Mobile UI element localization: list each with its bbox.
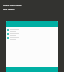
button[interactable] [6,28,58,32]
button[interactable] [6,36,58,40]
staticText: and debts [3,7,15,10]
staticText: Track your tasks [3,3,22,6]
button[interactable] [6,32,58,36]
